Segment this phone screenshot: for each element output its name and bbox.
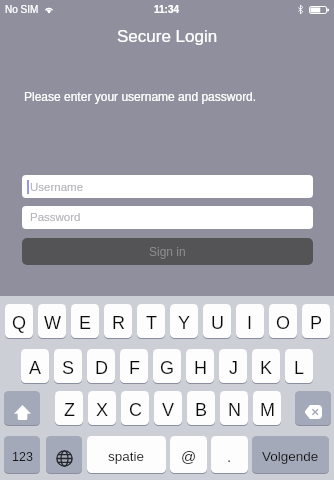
staticText: 11:34 <box>154 4 180 15</box>
button[interactable]: Switch keyboard <box>46 436 82 473</box>
staticText: M <box>260 400 275 420</box>
button[interactable]: U <box>203 304 231 338</box>
staticText: Q <box>12 313 27 333</box>
staticText: P <box>310 313 323 333</box>
staticText: X <box>96 400 109 420</box>
staticText: Y <box>178 313 191 333</box>
staticText: I <box>247 313 253 333</box>
button[interactable]: N <box>220 391 248 425</box>
button[interactable]: K <box>252 349 280 383</box>
staticText: J <box>229 358 238 378</box>
button[interactable]: L <box>285 349 313 383</box>
button[interactable]: T <box>137 304 165 338</box>
staticText: F <box>129 358 140 378</box>
staticText: U <box>211 313 224 333</box>
staticText: Volgende <box>262 449 319 464</box>
button[interactable]: G <box>153 349 181 383</box>
button[interactable]: B <box>187 391 215 425</box>
staticText: No SIM <box>5 4 39 15</box>
staticText: H <box>194 358 207 378</box>
staticText: K <box>260 358 273 378</box>
staticText: L <box>294 358 305 378</box>
staticText: Secure Login <box>117 27 218 46</box>
staticText: W <box>44 313 61 333</box>
staticText: A <box>29 358 42 378</box>
button[interactable]: O <box>269 304 297 338</box>
button[interactable]: W <box>38 304 66 338</box>
staticText: @ <box>181 448 197 465</box>
staticText: G <box>160 358 175 378</box>
button[interactable]: Backspace <box>295 391 331 425</box>
button[interactable]: Username <box>22 175 313 198</box>
button[interactable]: Password <box>22 206 313 229</box>
button[interactable]: Sign in <box>22 238 313 265</box>
staticText: V <box>162 400 175 420</box>
staticText: B <box>195 400 208 420</box>
staticText: Username <box>30 181 84 194</box>
button[interactable]: A <box>21 349 49 383</box>
staticText: N <box>228 400 241 420</box>
button[interactable]: P <box>302 304 330 338</box>
button[interactable]: E <box>71 304 99 338</box>
button[interactable]: M <box>253 391 281 425</box>
button[interactable]: 123 <box>4 436 40 473</box>
staticText: C <box>129 400 142 420</box>
button[interactable]: V <box>154 391 182 425</box>
button[interactable]: D <box>87 349 115 383</box>
staticText: S <box>62 358 75 378</box>
button[interactable]: R <box>104 304 132 338</box>
button[interactable]: . <box>211 436 248 473</box>
staticText: O <box>276 313 291 333</box>
button[interactable]: Y <box>170 304 198 338</box>
button[interactable]: C <box>121 391 149 425</box>
staticText: E <box>79 313 92 333</box>
button[interactable]: H <box>186 349 214 383</box>
staticText: Z <box>64 400 75 420</box>
button[interactable]: J <box>219 349 247 383</box>
button[interactable]: Volgende <box>252 436 329 473</box>
staticText: T <box>146 313 157 333</box>
staticText: Password <box>30 211 81 224</box>
staticText: 123 <box>12 450 33 464</box>
button[interactable]: Q <box>5 304 33 338</box>
staticText: Sign in <box>149 245 186 258</box>
button[interactable]: S <box>54 349 82 383</box>
button[interactable]: @ <box>170 436 207 473</box>
staticText: D <box>95 358 108 378</box>
button[interactable]: X <box>88 391 116 425</box>
button[interactable]: Shift <box>4 391 40 425</box>
staticText: spatie <box>108 449 145 464</box>
button[interactable]: I <box>236 304 264 338</box>
staticText: . <box>227 448 232 465</box>
button[interactable]: spatie <box>87 436 166 473</box>
button[interactable]: Z <box>55 391 83 425</box>
staticText: R <box>112 313 125 333</box>
button[interactable]: F <box>120 349 148 383</box>
staticText: Please enter your username and password. <box>24 90 257 103</box>
